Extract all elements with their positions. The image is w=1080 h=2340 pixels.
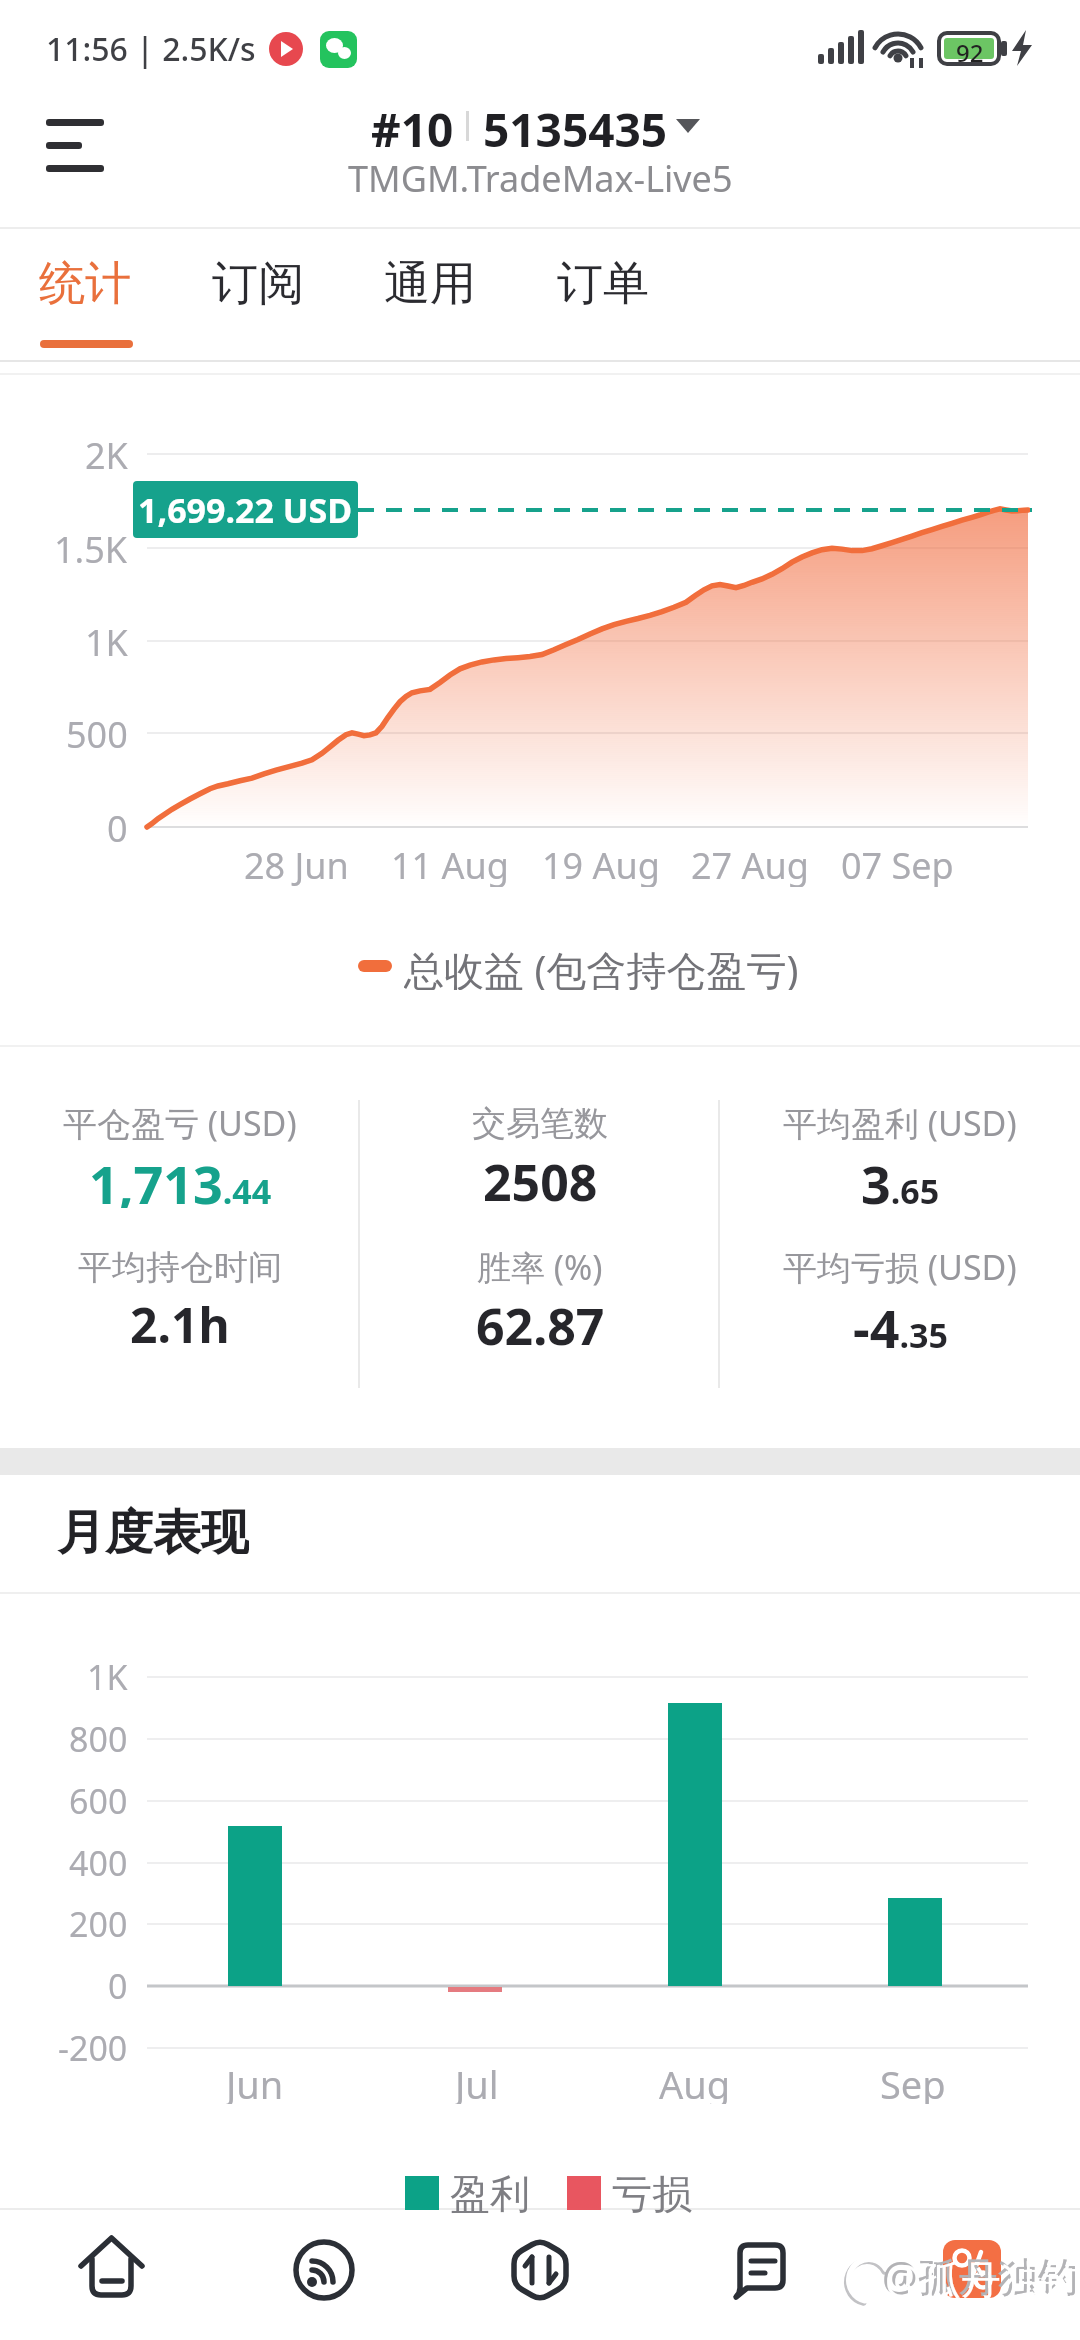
staticText: -4.35 — [853, 1292, 948, 1350]
staticText: 平均亏损 (USD) — [783, 1244, 1017, 1290]
staticText: 600 — [69, 1778, 128, 1824]
staticText: 800 — [69, 1716, 128, 1762]
staticText: 2.1h — [130, 1292, 230, 1350]
staticText: 订单 — [557, 255, 649, 313]
staticText: 1K — [85, 618, 128, 664]
staticText: 总收益 (包含持仓盈亏) — [404, 942, 799, 990]
button[interactable] — [432, 2210, 648, 2340]
staticText: 亏损 — [612, 2169, 692, 2217]
button[interactable]: #10 — [0, 98, 1080, 154]
staticText: 11:56 | 2.5K/s — [46, 27, 256, 71]
staticText: 1.5K — [54, 525, 128, 571]
button[interactable] — [864, 2210, 1080, 2340]
staticText: 07 Sep — [841, 841, 954, 887]
staticText: 交易笔数 — [472, 1102, 608, 1145]
staticText: 统计 — [39, 255, 131, 313]
button[interactable] — [216, 2210, 432, 2340]
staticText: 200 — [69, 1901, 128, 1947]
staticText: 胜率 (%) — [477, 1244, 603, 1290]
staticText: 2508 — [483, 1148, 598, 1208]
staticText: Aug — [659, 2058, 731, 2104]
staticText: 28 Jun — [244, 841, 349, 887]
staticText: 500 — [66, 710, 128, 756]
staticText: 0 — [107, 804, 128, 850]
staticText: @孤丹独钓 — [882, 2248, 1078, 2298]
button[interactable]: 统计 — [18, 232, 152, 336]
staticText: #10 — [371, 98, 454, 154]
staticText: 月度表现 — [57, 1503, 249, 1559]
button[interactable]: 订阅 — [190, 232, 326, 336]
button[interactable] — [648, 2210, 864, 2340]
button[interactable] — [28, 100, 124, 190]
staticText: 通用 — [384, 255, 476, 313]
staticText: 1,713.44 — [89, 1148, 272, 1208]
staticText: 400 — [69, 1840, 128, 1886]
staticText: 2K — [85, 431, 128, 477]
staticText: 11 Aug — [391, 841, 509, 887]
staticText: TMGM.TradeMax-Live5 — [348, 154, 733, 196]
staticText: 订阅 — [212, 255, 304, 313]
staticText: 27 Aug — [691, 841, 809, 887]
staticText: 平均持仓时间 — [78, 1246, 282, 1289]
staticText: 0 — [108, 1963, 128, 2009]
button[interactable]: 通用 — [362, 232, 498, 336]
staticText: Jun — [226, 2058, 284, 2104]
staticText: -200 — [58, 2025, 128, 2071]
staticText: 3.65 — [861, 1148, 940, 1208]
staticText: 5135435 — [483, 98, 668, 154]
staticText: Sep — [880, 2058, 946, 2104]
button[interactable]: 订单 — [536, 232, 670, 336]
staticText: Jul — [455, 2058, 499, 2104]
staticText: 1K — [87, 1654, 128, 1700]
staticText: 92 — [956, 36, 984, 62]
staticText: 盈利 — [450, 2169, 530, 2217]
button[interactable] — [0, 2210, 216, 2340]
staticText: 平均盈利 (USD) — [783, 1100, 1017, 1146]
staticText: 19 Aug — [542, 841, 660, 887]
staticText: @孤丹独钓 — [885, 2251, 1080, 2301]
staticText: 62.87 — [476, 1292, 605, 1350]
staticText: 1,699.22 USD — [138, 487, 353, 533]
staticText: 平仓盈亏 (USD) — [63, 1100, 297, 1146]
